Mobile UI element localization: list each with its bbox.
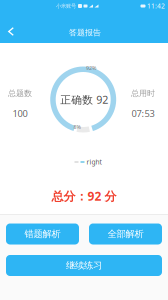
staticText: 总用时: [131, 88, 155, 98]
button[interactable]: 继续练习: [6, 255, 162, 276]
staticText: 正确数 92: [60, 92, 108, 107]
staticText: 全部解析: [107, 228, 143, 240]
staticText: 07:53: [131, 107, 154, 120]
button[interactable]: Back: [0, 18, 22, 44]
staticText: 答题报告: [69, 28, 101, 37]
staticText: 100: [12, 107, 27, 120]
staticText: 总分：92 分: [51, 188, 116, 204]
staticText: 8%: [73, 123, 80, 131]
staticText: 错题解析: [24, 228, 60, 240]
staticText: 92%: [86, 64, 96, 72]
staticText: 11:42: [147, 2, 165, 10]
staticText: 小米账号: [56, 3, 76, 9]
button[interactable]: 全部解析: [89, 223, 162, 244]
button[interactable]: 错题解析: [6, 223, 79, 244]
staticText: 继续练习: [66, 260, 102, 271]
staticText: right: [86, 158, 101, 166]
staticText: 总题数: [8, 88, 32, 98]
